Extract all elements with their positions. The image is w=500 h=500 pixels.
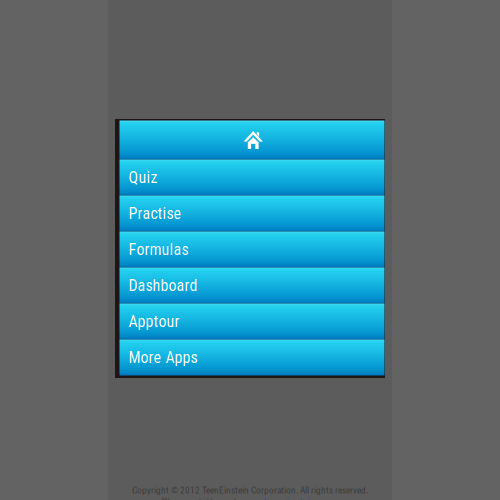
button[interactable]: Home <box>119 120 384 159</box>
button[interactable]: Quiz <box>119 159 384 195</box>
staticText: Dashboard <box>128 276 197 295</box>
staticText: Practise <box>128 204 181 223</box>
staticText: Formulas <box>128 240 188 259</box>
staticText: Apptour <box>128 312 179 331</box>
button[interactable]: Practise <box>119 195 384 231</box>
button[interactable]: More Apps <box>119 339 384 375</box>
button[interactable]: Formulas <box>119 231 384 267</box>
button[interactable]: Apptour <box>119 303 384 339</box>
staticText: www.teeneinstein.com <box>239 496 338 500</box>
staticText: Quiz <box>128 168 157 187</box>
staticText: More Apps <box>128 348 197 367</box>
staticText: Please visit us at <box>161 496 236 500</box>
button[interactable]: Dashboard <box>119 267 384 303</box>
button[interactable]: www.teeneinstein.com <box>239 496 338 500</box>
staticText: Copyright © 2012 TeenEinstein Corporatio… <box>132 485 368 496</box>
